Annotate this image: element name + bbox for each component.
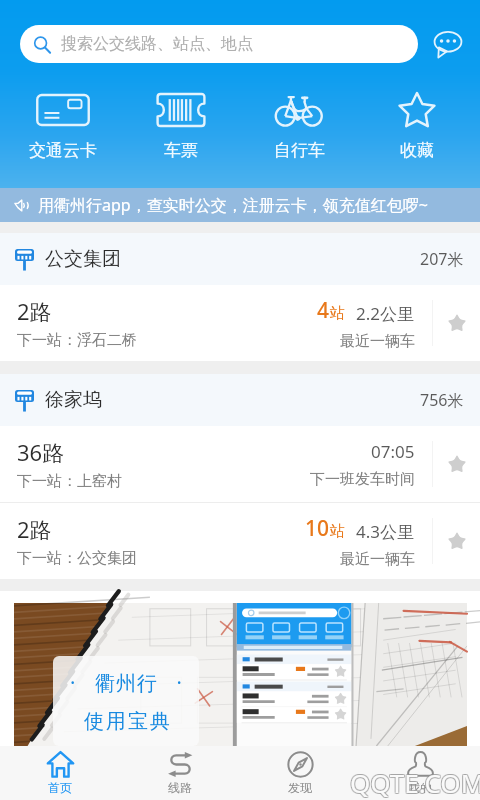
button[interactable]: 自行车 bbox=[244, 93, 354, 161]
staticText: QQTE.COM bbox=[349, 766, 480, 800]
staticText: QQTE.COM bbox=[349, 765, 480, 800]
staticText: 用衢州行app，查实时公交，注册云卡，领充值红包啰~ bbox=[38, 194, 428, 216]
staticText: 车票 bbox=[164, 140, 198, 161]
staticText: · 衢州行 · bbox=[70, 669, 183, 696]
staticText: 自行车 bbox=[274, 140, 325, 161]
staticText: 下一班发车时间 bbox=[310, 470, 415, 489]
staticText: 我的 bbox=[408, 780, 432, 795]
staticText: 36路 bbox=[17, 437, 65, 467]
button[interactable]: 首页 bbox=[0, 746, 120, 800]
staticText: 首页 bbox=[48, 780, 72, 795]
staticText: QQTE.COM bbox=[351, 764, 480, 799]
staticText: QQTE.COM bbox=[349, 764, 480, 799]
staticText: QQTE.COM bbox=[350, 765, 480, 800]
button[interactable]: Promotion banner bbox=[14, 603, 467, 746]
button[interactable]: Favorite bbox=[433, 426, 480, 502]
staticText: 发现 bbox=[288, 780, 312, 795]
staticText: 最近一辆车 bbox=[340, 332, 415, 351]
staticText: 207米 bbox=[420, 248, 464, 270]
staticText: 4 bbox=[317, 296, 330, 325]
staticText: 10 bbox=[305, 514, 330, 543]
button[interactable]: 线路 bbox=[120, 746, 240, 800]
staticText: 2.2公里 bbox=[356, 302, 415, 325]
button[interactable]: 收藏 bbox=[362, 93, 472, 161]
staticText: 搜索公交线路、站点、地点 bbox=[61, 34, 253, 54]
button[interactable]: 徐家坞 bbox=[0, 374, 480, 426]
staticText: 最近一辆车 bbox=[340, 550, 415, 569]
button[interactable]: Favorite bbox=[433, 503, 480, 579]
button[interactable]: 2路 bbox=[0, 503, 480, 579]
staticText: QQTE.COM bbox=[351, 765, 480, 800]
staticText: 徐家坞 bbox=[45, 388, 102, 412]
button[interactable]: Messages bbox=[428, 24, 468, 64]
button[interactable]: Favorite bbox=[433, 285, 480, 361]
staticText: 2路 bbox=[17, 514, 52, 544]
staticText: QQTE.COM bbox=[350, 766, 480, 800]
staticText: 4.3公里 bbox=[356, 520, 415, 543]
staticText: 站 bbox=[330, 304, 345, 323]
staticText: 下一站：浮石二桥 bbox=[17, 331, 137, 350]
staticText: 2路 bbox=[17, 296, 52, 326]
staticText: 线路 bbox=[168, 780, 192, 795]
button[interactable]: 2路 bbox=[0, 285, 480, 361]
button[interactable]: 我的 bbox=[360, 746, 480, 800]
staticText: 07:05 bbox=[371, 440, 415, 463]
staticText: 756米 bbox=[420, 389, 464, 411]
staticText: QQTE.COM bbox=[351, 766, 480, 800]
staticText: QQTE.COM bbox=[350, 764, 480, 799]
button[interactable]: 车票 bbox=[126, 93, 236, 161]
button[interactable]: 交通云卡 bbox=[8, 93, 118, 161]
staticText: 使用宝典 bbox=[83, 709, 171, 734]
button[interactable]: 公交集团 bbox=[0, 233, 480, 285]
staticText: 站 bbox=[330, 522, 345, 541]
button[interactable]: 36路 bbox=[0, 426, 480, 502]
button[interactable]: 发现 bbox=[240, 746, 360, 800]
button[interactable]: 用衢州行app，查实时公交，注册云卡，领充值红包啰~ bbox=[0, 188, 480, 222]
staticText: 收藏 bbox=[400, 140, 434, 161]
staticText: 下一站：上窑村 bbox=[17, 472, 122, 491]
button[interactable]: 搜索公交线路、站点、地点 bbox=[20, 25, 418, 63]
staticText: 交通云卡 bbox=[29, 140, 97, 161]
staticText: 公交集团 bbox=[45, 247, 121, 271]
staticText: 下一站：公交集团 bbox=[17, 549, 137, 568]
